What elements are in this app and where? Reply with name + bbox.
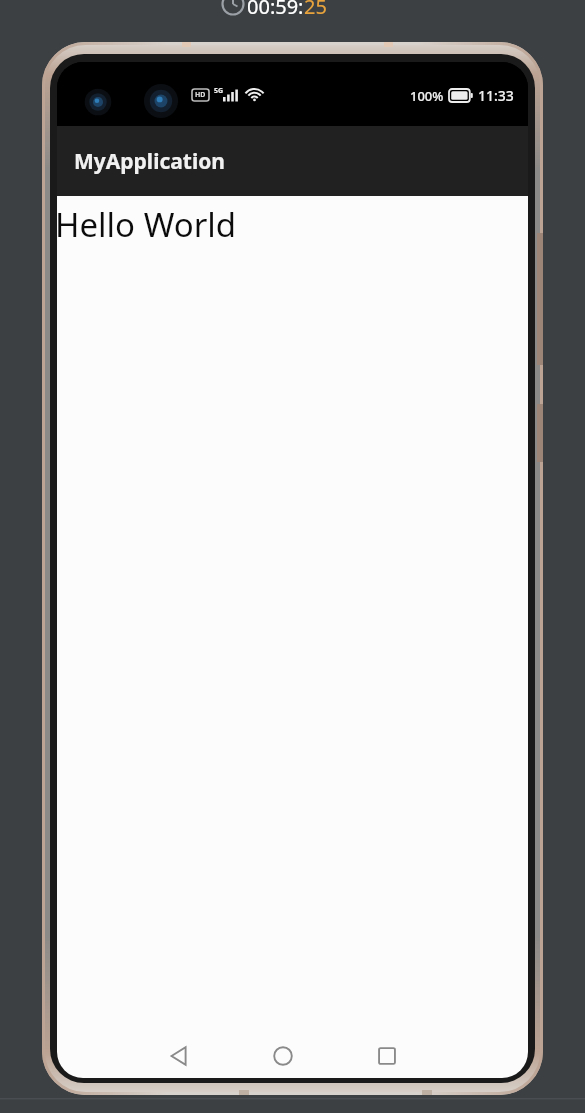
button[interactable]: Back bbox=[162, 1039, 196, 1073]
staticText: HD bbox=[195, 90, 206, 100]
button[interactable]: Recents bbox=[370, 1039, 404, 1073]
staticText: 100% bbox=[410, 87, 444, 105]
staticText: 25 bbox=[304, 0, 327, 17]
staticText: 11:33 bbox=[478, 86, 514, 105]
staticText: 5G bbox=[214, 86, 224, 96]
button[interactable]: MyApplication bbox=[57, 126, 528, 196]
staticText: 00:59: bbox=[247, 0, 304, 17]
button[interactable]: Home bbox=[266, 1039, 300, 1073]
staticText: Hello World bbox=[57, 202, 237, 247]
staticText: MyApplication bbox=[74, 147, 225, 176]
